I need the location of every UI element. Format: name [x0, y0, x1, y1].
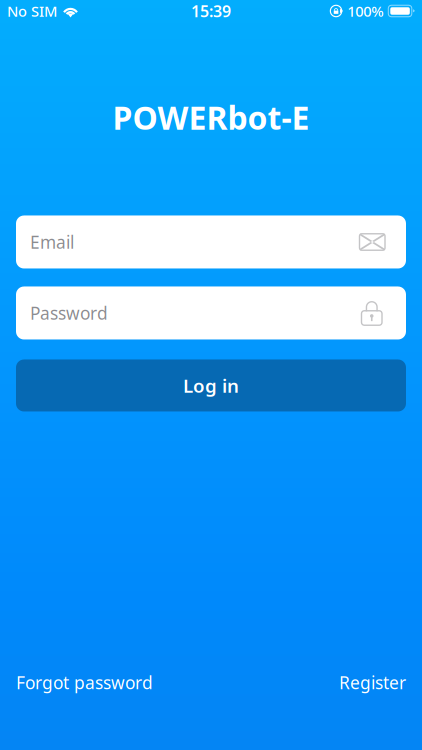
- staticText: POWERbot-E: [112, 96, 309, 138]
- staticText: Password: [30, 301, 108, 324]
- staticText: 100%: [347, 1, 383, 21]
- button[interactable]: Log in: [16, 359, 406, 411]
- staticText: No SIM: [7, 1, 57, 21]
- staticText: Register: [339, 671, 406, 694]
- staticText: Log in: [183, 373, 239, 398]
- button[interactable]: Email: [16, 215, 406, 268]
- staticText: 15:39: [191, 0, 231, 22]
- button[interactable]: Register: [339, 671, 406, 694]
- staticText: Email: [30, 230, 74, 253]
- staticText: Forgot password: [16, 671, 153, 694]
- button[interactable]: Forgot password: [16, 671, 153, 694]
- button[interactable]: Password: [16, 286, 406, 339]
